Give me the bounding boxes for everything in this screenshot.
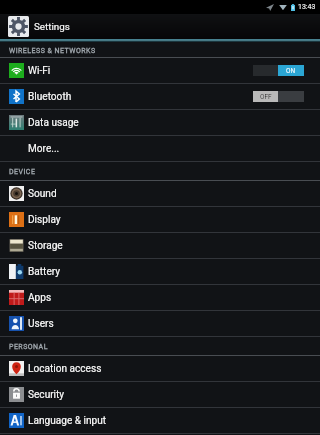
button[interactable]: Bluetooth (0, 84, 320, 109)
staticText: Location access (28, 363, 102, 375)
button[interactable]: Settings (0, 14, 320, 39)
button[interactable]: Location access (0, 356, 320, 381)
staticText: DEVICE (9, 168, 36, 176)
button[interactable]: Security (0, 382, 320, 407)
button[interactable]: More... (0, 136, 320, 161)
button[interactable]: Battery (0, 259, 320, 284)
staticText: Users (28, 318, 54, 330)
staticText: Bluetooth (28, 91, 72, 103)
staticText: Apps (28, 292, 52, 304)
button[interactable]: Bluetooth off (253, 91, 304, 102)
staticText: Display (28, 214, 61, 226)
staticText: OFF (260, 93, 272, 101)
staticText: ON (286, 67, 296, 75)
button[interactable]: Wi-Fi on (253, 65, 304, 76)
button[interactable]: Storage (0, 233, 320, 258)
staticText: Security (28, 389, 65, 401)
staticText: WIRELESS & NETWORKS (9, 47, 96, 55)
staticText: Data usage (28, 117, 79, 129)
staticText: Sound (28, 188, 57, 200)
staticText: Battery (28, 266, 61, 278)
staticText: Wi-Fi (28, 65, 51, 77)
staticText: Storage (28, 240, 63, 252)
button[interactable]: Display (0, 207, 320, 232)
button[interactable]: Data usage (0, 110, 320, 135)
button[interactable]: Users (0, 311, 320, 336)
staticText: Language & input (28, 415, 107, 427)
button[interactable]: Sound (0, 181, 320, 206)
button[interactable]: Apps (0, 285, 320, 310)
button[interactable]: Wi-Fi (0, 58, 320, 83)
staticText: More... (28, 143, 60, 155)
staticText: Settings (34, 21, 70, 32)
staticText: 13:43 (298, 3, 316, 11)
button[interactable]: Language & input (0, 408, 320, 433)
staticText: PERSONAL (9, 343, 48, 351)
